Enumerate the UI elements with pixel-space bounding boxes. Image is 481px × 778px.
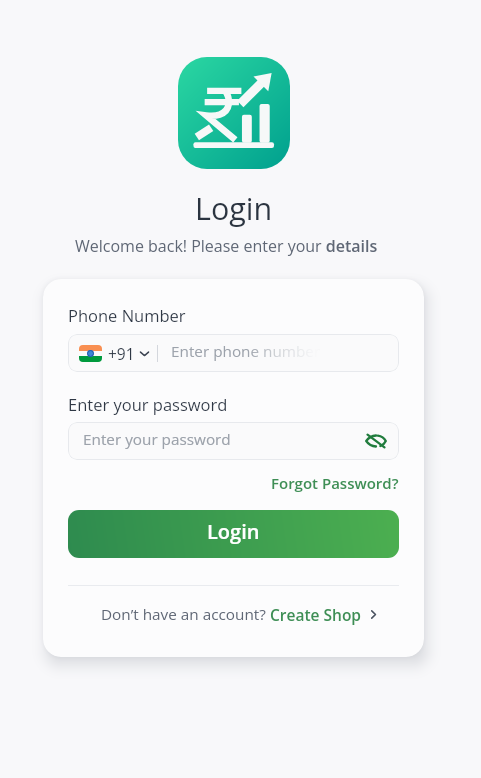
staticText: Enter your password <box>83 429 364 450</box>
staticText: Create Shop <box>270 604 362 625</box>
staticText: Phone Number <box>68 304 186 326</box>
button[interactable]: Don’t have an account? <box>68 604 399 625</box>
staticText: Login <box>195 187 273 229</box>
button[interactable]: +91 <box>68 334 399 372</box>
button[interactable]: Show password <box>364 430 388 452</box>
staticText: Enter your password <box>68 393 228 415</box>
staticText: Login <box>207 518 260 545</box>
staticText: Enter phone number <box>171 341 321 362</box>
button[interactable]: Forgot Password? <box>271 473 399 493</box>
button[interactable]: Login <box>68 510 399 558</box>
button[interactable]: Enter your password <box>68 422 399 460</box>
staticText: Welcome back! Please enter your details <box>75 235 378 257</box>
staticText: +91 <box>108 343 135 364</box>
staticText: Don’t have an account? <box>101 604 270 625</box>
